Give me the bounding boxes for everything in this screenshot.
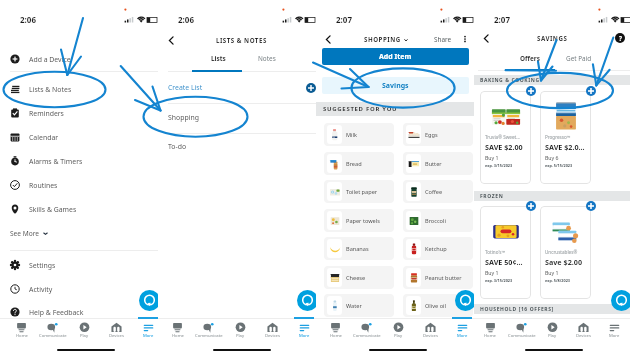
button[interactable]: More — [288, 319, 316, 341]
button[interactable]: Help — [615, 33, 625, 43]
button[interactable]: Alexa — [611, 290, 630, 311]
button[interactable]: Eggs — [403, 123, 473, 146]
button[interactable]: Broccoli — [403, 209, 473, 232]
staticText: Peanut butter — [425, 274, 462, 282]
staticText: SAVE $2.0... — [545, 142, 585, 152]
button[interactable]: Communicate — [37, 319, 68, 341]
button[interactable]: To-do — [158, 133, 316, 159]
button[interactable]: More — [446, 319, 474, 341]
staticText: Play — [394, 333, 403, 339]
button[interactable]: Home — [474, 319, 506, 341]
staticText: LISTS & NOTES — [216, 36, 267, 44]
button[interactable]: Offers — [506, 54, 554, 70]
button[interactable]: Alarms & Timers — [0, 150, 158, 172]
staticText: SUGGESTED FOR YOU — [323, 105, 398, 113]
button[interactable]: Bananas — [324, 237, 394, 260]
button[interactable]: Toilet paper — [324, 180, 394, 203]
button[interactable]: Calendar — [0, 126, 158, 148]
staticText: Add a Device — [29, 55, 71, 64]
staticText: Reminders — [29, 109, 64, 118]
button[interactable]: Play — [382, 319, 414, 341]
button[interactable]: Uncrustables® — [540, 206, 591, 299]
button[interactable]: Play — [68, 319, 100, 341]
button[interactable]: Alexa — [139, 290, 158, 311]
button[interactable]: Back — [322, 33, 335, 46]
button[interactable]: Progresso™ — [540, 91, 591, 184]
button[interactable]: Get Paid — [555, 54, 603, 70]
button[interactable]: Lists & Notes — [0, 78, 158, 100]
button[interactable]: Alexa — [297, 290, 316, 311]
button[interactable]: Home — [6, 319, 37, 341]
staticText: Alarms & Timers — [29, 157, 83, 166]
button[interactable]: Savings — [322, 77, 469, 94]
button[interactable]: Milk — [324, 123, 394, 146]
button[interactable]: Cheese — [324, 266, 394, 289]
button[interactable]: Devices — [256, 319, 288, 341]
button[interactable]: Communicate — [193, 319, 224, 341]
button[interactable]: Bread — [324, 152, 394, 175]
button[interactable]: Devices — [568, 319, 599, 341]
button[interactable]: Devices — [414, 319, 446, 341]
staticText: Bananas — [346, 245, 369, 253]
button[interactable]: More options — [460, 34, 470, 44]
button[interactable]: Add offer — [586, 201, 596, 211]
staticText: SAVE $2.00 — [485, 142, 523, 152]
staticText: More — [457, 333, 468, 339]
button[interactable]: Shopping — [158, 104, 316, 130]
staticText: Devices — [109, 333, 124, 339]
button[interactable]: Communicate — [506, 319, 537, 341]
button[interactable]: Settings — [0, 254, 158, 276]
staticText: exp. 3/15/2023 — [485, 278, 513, 283]
button[interactable]: Devices — [100, 319, 132, 341]
button[interactable]: Lists — [195, 54, 241, 72]
staticText: Uncrustables® — [545, 249, 578, 255]
button[interactable]: Coffee — [403, 180, 473, 203]
button[interactable]: Share — [434, 35, 452, 44]
button[interactable]: Play — [537, 319, 568, 341]
button[interactable]: Butter — [403, 152, 473, 175]
button[interactable]: Ketchup — [403, 237, 473, 260]
button[interactable]: Reminders — [0, 102, 158, 124]
button[interactable]: See More — [0, 222, 158, 244]
button[interactable]: More — [599, 319, 630, 341]
staticText: 2:06 — [20, 14, 36, 25]
staticText: FROZEN — [480, 193, 504, 200]
button[interactable]: Communicate — [351, 319, 382, 341]
staticText: Routines — [29, 181, 58, 190]
button[interactable]: Add offer — [526, 201, 536, 211]
button[interactable]: Back — [480, 32, 493, 45]
button[interactable]: Routines — [0, 174, 158, 196]
staticText: Communicate — [508, 333, 536, 339]
button[interactable]: Notes — [244, 54, 290, 72]
button[interactable]: Create List — [158, 74, 316, 100]
button[interactable]: Help & Feedback — [0, 301, 158, 323]
button[interactable]: Add list — [306, 83, 316, 93]
button[interactable]: Add a Device — [0, 48, 158, 70]
staticText: ? — [619, 34, 622, 42]
button[interactable]: Home — [320, 319, 351, 341]
staticText: See More — [10, 229, 40, 238]
staticText: Buy 1 — [485, 154, 499, 161]
button[interactable]: Home — [162, 319, 193, 341]
staticText: Shopping — [168, 113, 199, 122]
button[interactable]: Olive oil — [403, 294, 473, 317]
button[interactable]: Add offer — [526, 86, 536, 96]
button[interactable]: Add offer — [586, 86, 596, 96]
button[interactable]: More — [132, 319, 158, 341]
button[interactable]: Activity — [0, 278, 158, 300]
button[interactable]: Truvia® Sweet... — [480, 91, 531, 184]
staticText: More — [299, 333, 310, 339]
button[interactable]: Back — [165, 34, 178, 47]
staticText: Lists & Notes — [29, 85, 72, 94]
button[interactable]: Play — [224, 319, 256, 341]
button[interactable]: Add Item — [322, 48, 469, 65]
button[interactable]: Paper towels — [324, 209, 394, 232]
staticText: Communicate — [353, 333, 381, 339]
button[interactable]: Skills & Games — [0, 198, 158, 220]
staticText: exp. 3/15/2023 — [485, 163, 513, 168]
button[interactable]: Alexa — [455, 290, 474, 311]
button[interactable]: Totino's™ — [480, 206, 531, 299]
button[interactable]: Water — [324, 294, 394, 317]
button[interactable]: Peanut butter — [403, 266, 473, 289]
staticText: Broccoli — [425, 217, 446, 225]
